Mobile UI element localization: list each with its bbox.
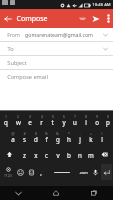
button[interactable]: .com bbox=[77, 163, 90, 181]
button[interactable]: - bbox=[74, 129, 85, 146]
staticText: b bbox=[67, 151, 71, 159]
button[interactable]: Home bbox=[37, 186, 75, 200]
button[interactable]: 9 bbox=[91, 112, 102, 129]
staticText: @ bbox=[11, 131, 15, 136]
staticText: Compose email bbox=[7, 73, 48, 81]
button[interactable]: n bbox=[74, 146, 85, 163]
button[interactable]: 4 bbox=[36, 112, 47, 129]
staticText: 5 bbox=[52, 114, 54, 119]
staticText: c bbox=[45, 151, 48, 159]
staticText: 9 bbox=[96, 114, 98, 119]
button[interactable]: m bbox=[85, 146, 96, 163]
button[interactable]: 1 bbox=[0, 112, 12, 129]
staticText: ?123 bbox=[4, 173, 12, 178]
button[interactable]: Backspace bbox=[97, 147, 112, 162]
staticText: d bbox=[34, 135, 38, 143]
button[interactable]: More options bbox=[103, 9, 113, 28]
button[interactable]: Subject bbox=[0, 56, 113, 69]
staticText: r bbox=[40, 118, 43, 126]
staticText: f bbox=[45, 135, 48, 143]
staticText: 6 bbox=[63, 114, 65, 119]
staticText: 2 bbox=[17, 114, 19, 119]
button[interactable]: b bbox=[63, 146, 74, 163]
staticText: h bbox=[67, 135, 71, 143]
staticText: # bbox=[23, 131, 26, 136]
staticText: x bbox=[34, 151, 38, 159]
staticText: y bbox=[62, 118, 66, 126]
staticText: - bbox=[79, 131, 81, 136]
button[interactable]: , bbox=[36, 163, 46, 181]
button[interactable]: * bbox=[63, 129, 74, 146]
staticText: * bbox=[68, 131, 70, 136]
button[interactable]: Recent apps bbox=[75, 186, 113, 200]
button[interactable]: Sticker bbox=[27, 164, 35, 180]
button[interactable]: % bbox=[41, 129, 52, 146]
button[interactable]: 8 bbox=[80, 112, 91, 129]
staticText: Compose bbox=[16, 14, 48, 24]
staticText: m bbox=[88, 151, 94, 159]
button[interactable]: @ bbox=[7, 129, 19, 146]
staticText: $ bbox=[35, 131, 37, 136]
button[interactable]: & bbox=[52, 129, 63, 146]
staticText: a bbox=[11, 135, 15, 143]
staticText: e bbox=[28, 118, 32, 126]
staticText: 10:46 AM bbox=[92, 2, 111, 8]
staticText: p bbox=[106, 118, 110, 126]
button[interactable]: x bbox=[30, 146, 41, 163]
staticText: w bbox=[16, 118, 21, 126]
button[interactable]: 3 bbox=[24, 112, 36, 129]
staticText: i bbox=[85, 118, 87, 126]
staticText: n bbox=[78, 151, 82, 159]
button[interactable]: 6 bbox=[58, 112, 69, 129]
button[interactable]: ?123 bbox=[0, 163, 15, 181]
staticText: Subject bbox=[7, 59, 27, 67]
button[interactable]: # bbox=[19, 129, 30, 146]
button[interactable]: Emoji bbox=[16, 164, 25, 180]
button[interactable]: Back bbox=[0, 9, 16, 28]
staticText: z bbox=[23, 151, 26, 159]
staticText: 1 bbox=[5, 114, 7, 119]
staticText: 8 bbox=[85, 114, 87, 119]
button[interactable]: Attach file bbox=[75, 9, 89, 28]
staticText: t bbox=[51, 118, 54, 126]
staticText: .com bbox=[79, 170, 88, 175]
staticText: & bbox=[56, 131, 59, 136]
staticText: j bbox=[79, 135, 81, 143]
staticText: k bbox=[89, 135, 93, 143]
button[interactable]: 0 bbox=[102, 112, 113, 129]
staticText: 7 bbox=[74, 114, 76, 119]
button[interactable]: Space bbox=[46, 163, 77, 181]
staticText: , bbox=[40, 168, 42, 176]
staticText: l bbox=[101, 135, 103, 143]
button[interactable]: ( bbox=[96, 129, 107, 146]
button[interactable]: $ bbox=[30, 129, 41, 146]
staticText: o bbox=[95, 118, 99, 126]
button[interactable]: 2 bbox=[12, 112, 24, 129]
button[interactable]: Send bbox=[89, 9, 103, 28]
button[interactable]: 7 bbox=[69, 112, 80, 129]
staticText: 3 bbox=[29, 114, 31, 119]
button[interactable]: To bbox=[0, 42, 113, 55]
staticText: gomarenateam@gmail.com bbox=[25, 31, 93, 38]
staticText: From bbox=[7, 31, 20, 38]
button[interactable]: From bbox=[0, 28, 113, 41]
button[interactable]: + bbox=[85, 129, 96, 146]
button[interactable]: Enter bbox=[101, 164, 112, 180]
button[interactable]: z bbox=[18, 146, 30, 163]
button[interactable]: v bbox=[52, 146, 63, 163]
staticText: 4 bbox=[41, 114, 43, 119]
staticText: u bbox=[73, 118, 77, 126]
staticText: ( bbox=[101, 131, 103, 136]
button[interactable]: 5 bbox=[47, 112, 58, 129]
button[interactable]: Shift bbox=[1, 147, 17, 162]
button[interactable]: Hide keyboard bbox=[0, 186, 37, 200]
staticText: v bbox=[56, 151, 60, 159]
button[interactable]: Voice input bbox=[91, 164, 99, 180]
button[interactable]: Compose email bbox=[0, 70, 113, 83]
staticText: % bbox=[45, 131, 48, 136]
staticText: q bbox=[4, 118, 8, 126]
staticText: + bbox=[90, 131, 92, 136]
staticText: s bbox=[23, 135, 26, 143]
staticText: g bbox=[56, 135, 60, 143]
button[interactable]: c bbox=[41, 146, 52, 163]
